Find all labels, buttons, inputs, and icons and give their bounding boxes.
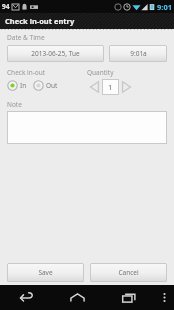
- staticText: Note: [7, 100, 22, 109]
- staticText: In: [20, 81, 27, 90]
- button[interactable]: 9:01a: [109, 45, 167, 62]
- button[interactable]: In: [7, 80, 27, 91]
- button[interactable]: [7, 111, 167, 144]
- staticText: Save: [38, 268, 53, 277]
- staticText: Date & Time: [7, 33, 45, 42]
- staticText: 1: [108, 82, 113, 92]
- button[interactable]: Save: [7, 263, 84, 282]
- button[interactable]: Home: [52, 285, 103, 310]
- button[interactable]: 1: [102, 79, 119, 95]
- button[interactable]: Out: [33, 80, 58, 91]
- button[interactable]: Recent apps: [103, 285, 154, 310]
- staticText: Out: [46, 81, 58, 90]
- button[interactable]: Decrease quantity: [87, 78, 102, 95]
- staticText: 94: [2, 2, 10, 11]
- staticText: Check in-out: [7, 68, 46, 77]
- staticText: 9:01: [157, 2, 172, 12]
- staticText: 9:01a: [130, 49, 147, 58]
- staticText: Check in-out entry: [5, 16, 75, 26]
- staticText: Quantity: [87, 68, 114, 77]
- button[interactable]: Cancel: [90, 263, 167, 282]
- staticText: Cancel: [118, 268, 139, 277]
- staticText: 2013-06-25, Tue: [31, 49, 80, 58]
- button[interactable]: More options: [154, 285, 174, 310]
- button[interactable]: Increase quantity: [119, 78, 134, 95]
- button[interactable]: 2013-06-25, Tue: [7, 45, 104, 62]
- button[interactable]: Back: [0, 285, 52, 310]
